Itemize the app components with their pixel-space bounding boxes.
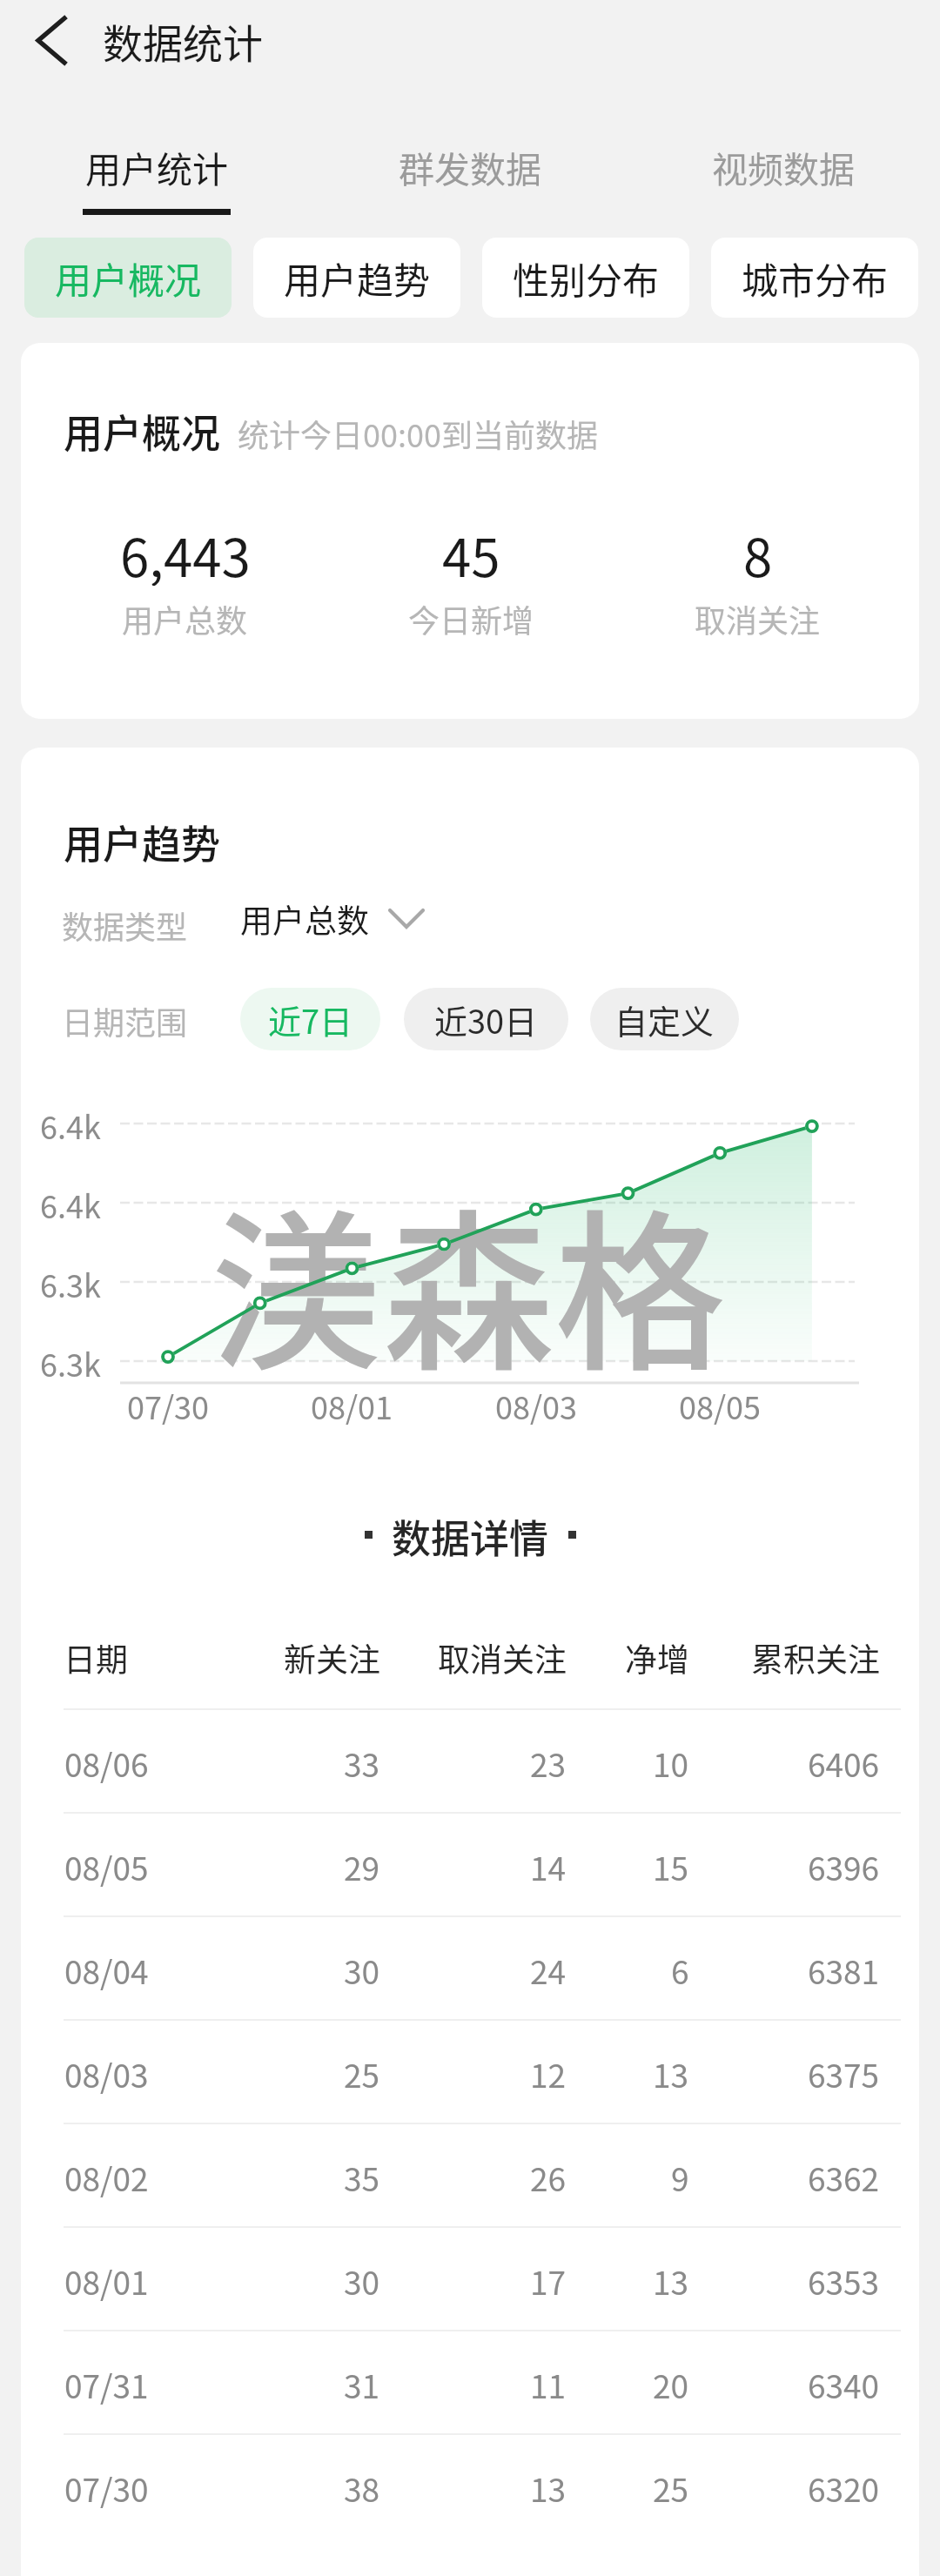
- staticText: 数据类型: [62, 902, 188, 948]
- staticText: 群发数据: [357, 141, 583, 192]
- button[interactable]: 近30日: [404, 988, 568, 1050]
- staticText: 取消关注: [438, 1634, 567, 1676]
- staticText: 新关注: [284, 1634, 380, 1676]
- staticText: 净增: [625, 1634, 689, 1676]
- staticText: 07/30: [64, 2465, 149, 2512]
- staticText: 38: [344, 2465, 380, 2506]
- staticText: 用户总数: [240, 896, 369, 943]
- staticText: 用户总数: [122, 596, 248, 641]
- staticText: 6381: [808, 1947, 880, 1989]
- staticText: 6,443: [120, 516, 251, 586]
- staticText: 6375: [808, 2050, 880, 2092]
- staticText: 近7日: [268, 996, 353, 1043]
- staticText: 用户趋势: [64, 814, 221, 870]
- staticText: 07/31: [64, 2361, 149, 2408]
- button[interactable]: Back: [7, 0, 97, 80]
- staticText: 29: [344, 1843, 380, 1885]
- staticText: 6362: [808, 2154, 880, 2196]
- staticText: 08/01: [311, 1383, 393, 1428]
- button[interactable]: 用户趋势: [253, 238, 460, 318]
- staticText: 数据统计: [103, 12, 263, 70]
- staticText: 自定义: [614, 996, 715, 1043]
- staticText: 08/05: [679, 1383, 762, 1428]
- button[interactable]: 用户统计: [44, 122, 270, 222]
- staticText: 日期: [64, 1634, 128, 1681]
- staticText: 用户概况: [64, 403, 221, 460]
- staticText: 6396: [808, 1843, 880, 1885]
- staticText: 渼森格: [211, 1156, 727, 1404]
- staticText: 13: [530, 2465, 567, 2506]
- staticText: 12: [530, 2050, 567, 2092]
- staticText: 25: [653, 2465, 689, 2506]
- staticText: 24: [530, 1947, 567, 1989]
- staticText: 45: [442, 516, 500, 586]
- button[interactable]: 性别分布: [482, 238, 689, 318]
- staticText: 23: [530, 1740, 567, 1781]
- staticText: 6340: [808, 2361, 880, 2403]
- staticText: 31: [344, 2361, 380, 2403]
- staticText: 25: [344, 2050, 380, 2092]
- staticText: 11: [530, 2361, 567, 2403]
- staticText: 08/04: [64, 1947, 149, 1994]
- staticText: 30: [344, 1947, 380, 1989]
- staticText: 今日新增: [408, 596, 534, 641]
- staticText: 14: [530, 1843, 567, 1885]
- staticText: 13: [653, 2257, 689, 2299]
- button[interactable]: 视频数据: [670, 122, 896, 222]
- staticText: 6.4k: [40, 1103, 101, 1144]
- staticText: 6320: [808, 2465, 880, 2506]
- staticText: 6: [671, 1947, 689, 1989]
- staticText: 08/02: [64, 2154, 149, 2201]
- staticText: 6406: [808, 1740, 880, 1781]
- staticText: 用户概况: [55, 252, 202, 305]
- button[interactable]: 近7日: [240, 988, 380, 1050]
- staticText: 8: [743, 516, 773, 586]
- staticText: 数据详情: [392, 1508, 549, 1560]
- button[interactable]: 群发数据: [357, 122, 583, 222]
- staticText: 10: [653, 1740, 689, 1781]
- staticText: 13: [653, 2050, 689, 2092]
- staticText: 35: [344, 2154, 380, 2196]
- staticText: 性别分布: [513, 252, 660, 305]
- staticText: 17: [530, 2257, 567, 2299]
- staticText: 6.3k: [40, 1340, 101, 1382]
- staticText: 用户统计: [44, 141, 270, 192]
- staticText: 统计今日00:00到当前数据: [238, 411, 598, 456]
- staticText: 日期范围: [62, 998, 188, 1043]
- button[interactable]: 城市分布: [711, 238, 918, 318]
- button[interactable]: 用户总数: [240, 896, 425, 943]
- staticText: 累积关注: [751, 1634, 880, 1676]
- button[interactable]: 用户概况: [24, 238, 232, 318]
- staticText: 07/30: [127, 1383, 210, 1428]
- staticText: 近30日: [434, 996, 538, 1043]
- staticText: 26: [530, 2154, 567, 2196]
- staticText: 20: [653, 2361, 689, 2403]
- staticText: 视频数据: [670, 141, 896, 192]
- staticText: 9: [671, 2154, 689, 2196]
- staticText: 33: [344, 1740, 380, 1781]
- staticText: 15: [653, 1843, 689, 1885]
- button[interactable]: 自定义: [590, 988, 739, 1050]
- staticText: 08/05: [64, 1843, 149, 1890]
- staticText: 08/06: [64, 1740, 149, 1787]
- staticText: 用户趋势: [284, 252, 431, 305]
- staticText: 30: [344, 2257, 380, 2299]
- staticText: 6.3k: [40, 1261, 101, 1303]
- staticText: 城市分布: [742, 252, 889, 305]
- staticText: 08/03: [64, 2050, 149, 2097]
- staticText: 08/03: [495, 1383, 578, 1428]
- staticText: 取消关注: [695, 596, 821, 641]
- staticText: 08/01: [64, 2257, 149, 2304]
- staticText: 6353: [808, 2257, 880, 2299]
- staticText: 6.4k: [40, 1182, 101, 1224]
